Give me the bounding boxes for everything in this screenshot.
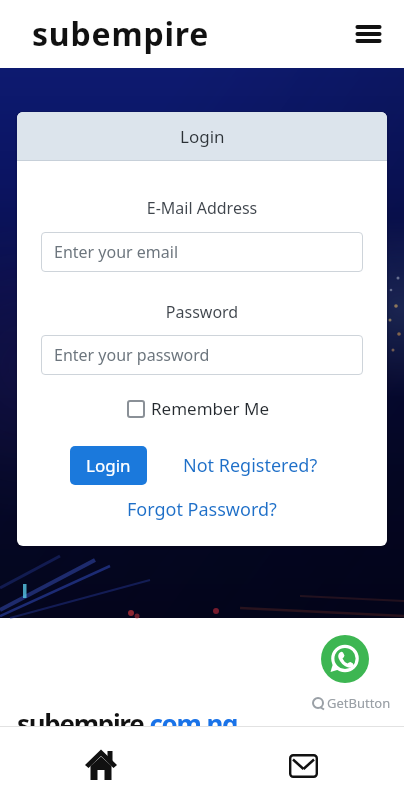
staticText: Enter your email bbox=[54, 241, 179, 263]
staticText: Remember Me bbox=[151, 397, 270, 420]
staticText: subempire bbox=[32, 12, 210, 56]
button[interactable]: Forgot Password? bbox=[127, 497, 277, 522]
staticText: subempire.com.ng bbox=[17, 706, 238, 726]
button[interactable]: Enter your email bbox=[41, 232, 363, 272]
staticText: GetButton bbox=[327, 694, 391, 712]
button[interactable]: Login bbox=[70, 446, 147, 485]
staticText: Password bbox=[17, 301, 387, 323]
staticText: Login bbox=[86, 454, 131, 477]
button[interactable]: subempire bbox=[24, 12, 210, 56]
button[interactable]: Enter your password bbox=[41, 335, 363, 375]
button[interactable] bbox=[321, 635, 369, 683]
button[interactable]: GetButton bbox=[312, 694, 391, 712]
button[interactable] bbox=[348, 14, 388, 54]
button[interactable] bbox=[202, 727, 404, 800]
staticText: E-Mail Address bbox=[17, 197, 387, 219]
staticText: Forgot Password? bbox=[127, 497, 277, 522]
staticText: Login bbox=[180, 125, 225, 148]
button[interactable] bbox=[0, 727, 202, 800]
staticText: Enter your password bbox=[54, 344, 210, 366]
staticText: Not Registered? bbox=[183, 453, 318, 478]
button[interactable]: Not Registered? bbox=[183, 453, 318, 478]
button[interactable]: Remember Me bbox=[17, 397, 380, 420]
